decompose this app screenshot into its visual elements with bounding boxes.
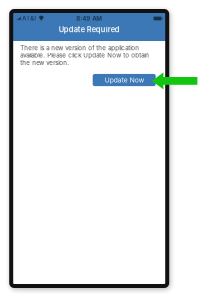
staticText: Update Required (59, 25, 120, 34)
staticText: AT&T (22, 15, 37, 22)
staticText: There is a new version of the applicatio… (20, 44, 149, 66)
staticText: Update Now (105, 76, 144, 84)
button[interactable]: Update Now (93, 74, 156, 86)
staticText: 8:49 AM (76, 15, 102, 22)
